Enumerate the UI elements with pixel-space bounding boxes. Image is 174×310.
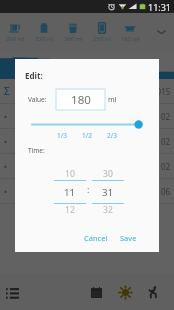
button[interactable]: • [0,104,174,128]
staticText: 1/2 [82,131,92,140]
staticText: 180 [71,92,91,108]
button[interactable]: Calendar [84,274,108,310]
button[interactable]: Cancel [84,233,108,243]
button[interactable]: • [0,154,174,178]
button[interactable]: • [0,179,174,203]
button[interactable]: 180 [56,89,105,110]
button[interactable]: 11 [54,181,86,203]
staticText: 06 [161,186,171,197]
staticText: ml [108,94,117,104]
button[interactable]: 1/2 [79,131,95,140]
staticText: Time: [28,146,45,155]
button[interactable]: 330 ml [30,13,59,53]
button[interactable]: 180 ml [116,13,145,53]
button[interactable]: 31 [92,181,124,203]
staticText: 330 ml [35,35,54,43]
staticText: 2/3 [107,131,117,140]
staticText: • [4,161,8,172]
staticText: 32 [103,204,113,216]
button[interactable]: 200 ml [1,13,30,53]
staticText: • [4,111,8,122]
staticText: 02 [161,136,171,147]
staticText: 250 ml [93,35,112,43]
staticText: : [87,183,90,195]
staticText: 200 ml [6,35,25,43]
button[interactable]: • [0,129,174,153]
staticText: • [4,136,8,147]
button[interactable]: 250 ml [88,13,117,53]
staticText: 1/3 [57,131,67,140]
button[interactable]: 2/3 [104,131,120,140]
button[interactable]: 10 [54,168,86,180]
staticText: 2015 [152,86,171,97]
button[interactable]: 1/3 [54,131,70,140]
staticText: 11:31 [148,1,172,13]
staticText: 02 [161,111,171,122]
button[interactable]: 32 [92,204,124,216]
staticText: • [4,186,8,197]
button[interactable]: 30 [92,168,124,180]
staticText: 200 ml [64,35,83,43]
button[interactable]: Σ [0,79,174,103]
staticText: 30 [103,168,113,180]
staticText: 31 [102,186,114,199]
staticText: 180 ml [121,35,140,43]
button[interactable]: 200 ml [59,13,88,53]
button[interactable]: Save [120,233,137,243]
button[interactable]: 12 [54,204,86,216]
staticText: 12 [65,204,75,216]
staticText: Edit: [25,70,43,81]
button[interactable]: More drinks [150,13,172,53]
staticText: Cancel [84,233,108,243]
staticText: Value: [28,95,47,104]
button[interactable]: List [0,274,25,310]
staticText: 02 [161,161,171,172]
staticText: 10 [65,168,75,180]
button[interactable]: Weather [113,274,137,310]
staticText: 11 [64,186,76,199]
button[interactable]: Activity [141,274,165,310]
staticText: Save [120,233,137,243]
staticText: Σ [4,84,10,98]
